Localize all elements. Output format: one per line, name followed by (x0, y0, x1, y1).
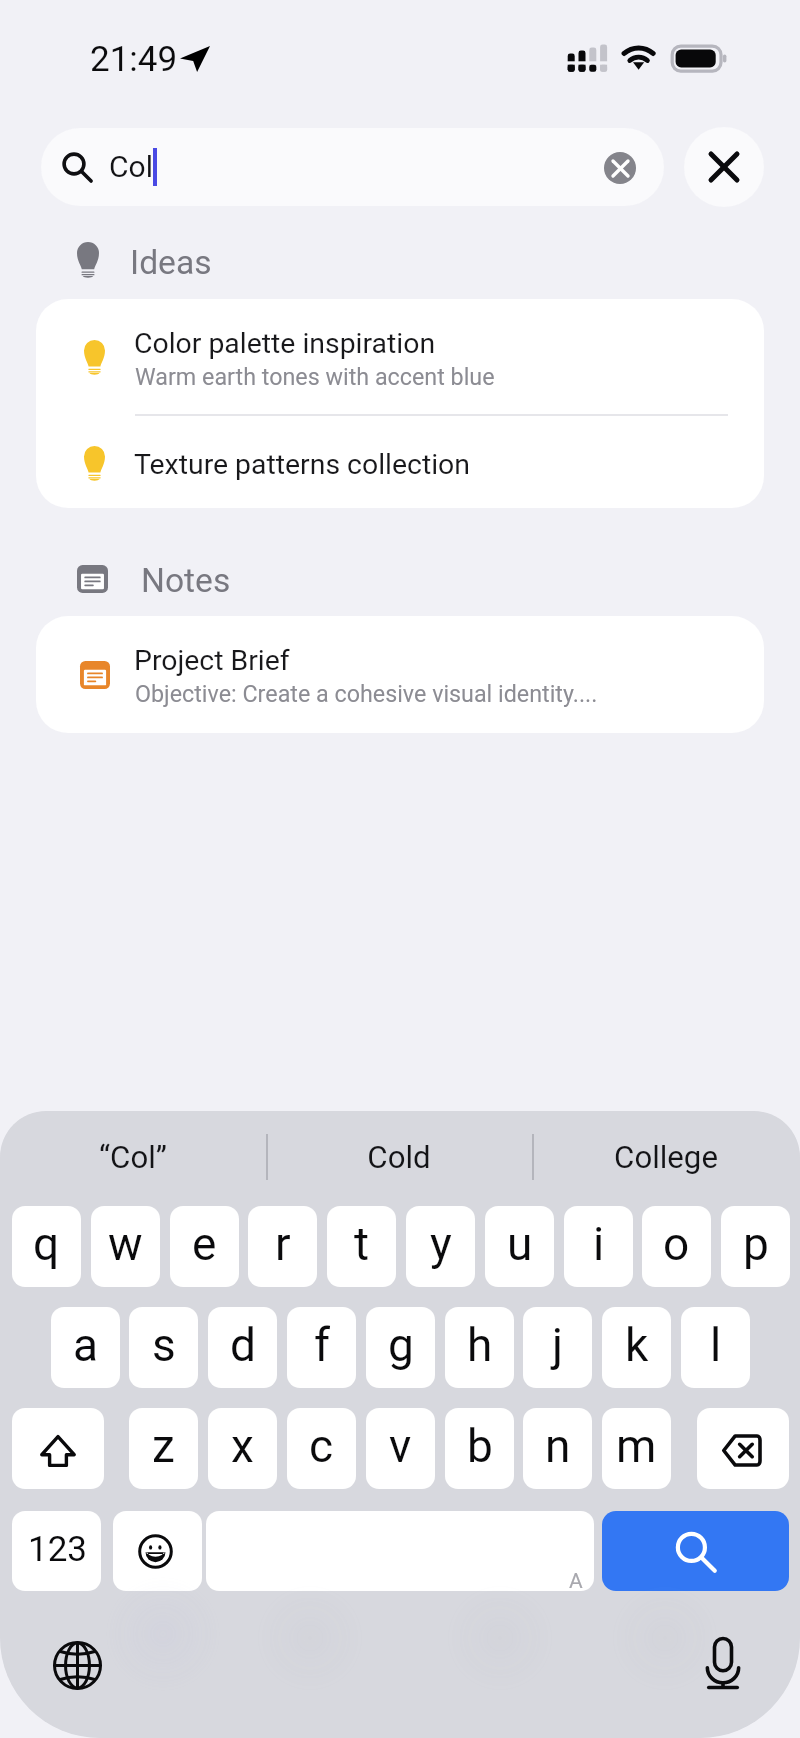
button[interactable]: Close search (684, 127, 764, 207)
staticText: v (389, 1419, 412, 1473)
button[interactable]: f (287, 1307, 356, 1388)
staticText: Project Brief (134, 644, 290, 677)
button[interactable]: u (485, 1206, 554, 1287)
staticText: Ideas (130, 243, 212, 282)
button[interactable]: t (327, 1206, 396, 1287)
button[interactable]: s (129, 1307, 198, 1388)
staticText: e (192, 1217, 217, 1271)
button[interactable]: q (12, 1206, 81, 1287)
staticText: c (309, 1419, 334, 1473)
staticText: b (467, 1419, 493, 1473)
button[interactable]: b (445, 1408, 514, 1489)
button[interactable]: n (523, 1408, 592, 1489)
staticText: w (108, 1217, 143, 1271)
staticText: A (569, 1569, 583, 1591)
button[interactable]: Space (206, 1511, 594, 1591)
button[interactable]: 123 (12, 1511, 101, 1591)
button[interactable]: Texture patterns collection (36, 414, 764, 506)
button[interactable]: j (523, 1307, 592, 1388)
button[interactable]: p (721, 1206, 790, 1287)
staticText: m (616, 1419, 657, 1473)
staticText: a (73, 1318, 99, 1372)
button[interactable]: i (564, 1206, 633, 1287)
staticText: n (545, 1419, 571, 1473)
button[interactable]: Emoji (113, 1511, 202, 1591)
staticText: f (314, 1318, 330, 1372)
button[interactable]: g (366, 1307, 435, 1388)
staticText: j (552, 1318, 564, 1372)
staticText: o (663, 1217, 690, 1271)
staticText: Notes (141, 561, 231, 600)
staticText: q (33, 1217, 60, 1271)
button[interactable]: h (445, 1307, 514, 1388)
button[interactable]: o (642, 1206, 711, 1287)
staticText: Warm earth tones with accent blue (135, 363, 495, 390)
staticText: x (231, 1419, 254, 1473)
staticText: 123 (28, 1529, 88, 1570)
button[interactable]: k (602, 1307, 671, 1388)
staticText: y (430, 1217, 452, 1271)
button[interactable]: l (681, 1307, 750, 1388)
button[interactable]: Col (41, 128, 664, 206)
staticText: r (275, 1217, 291, 1271)
staticText: Color palette inspiration (134, 327, 436, 360)
button[interactable]: x (208, 1408, 277, 1489)
button[interactable]: Backspace (697, 1408, 789, 1489)
staticText: Cold (367, 1139, 431, 1176)
staticText: College (614, 1139, 718, 1176)
button[interactable]: College (532, 1125, 800, 1189)
button[interactable]: Change keyboard language (45, 1633, 109, 1697)
button[interactable]: z (129, 1408, 198, 1489)
button[interactable]: a (51, 1307, 120, 1388)
staticText: Col (109, 149, 153, 184)
button[interactable]: d (208, 1307, 277, 1388)
staticText: p (743, 1217, 769, 1271)
staticText: Texture patterns collection (134, 448, 470, 481)
button[interactable]: m (602, 1408, 671, 1489)
staticText: l (710, 1318, 722, 1372)
button[interactable]: “Col” (0, 1125, 266, 1189)
button[interactable]: Shift (12, 1408, 104, 1489)
button[interactable]: y (406, 1206, 475, 1287)
staticText: g (388, 1318, 414, 1372)
staticText: t (354, 1217, 370, 1271)
button[interactable]: Cold (266, 1125, 532, 1189)
button[interactable]: r (248, 1206, 317, 1287)
button[interactable]: Voice input (690, 1631, 754, 1695)
button[interactable]: Project Brief (36, 616, 764, 733)
button[interactable]: Color palette inspiration (36, 299, 764, 414)
button[interactable]: v (366, 1408, 435, 1489)
staticText: u (507, 1217, 533, 1271)
button[interactable]: Search (602, 1511, 789, 1591)
staticText: Objective: Create a cohesive visual iden… (135, 680, 598, 707)
button[interactable]: w (91, 1206, 160, 1287)
staticText: 21:49 (90, 39, 178, 80)
staticText: k (625, 1318, 649, 1372)
staticText: i (593, 1217, 605, 1271)
staticText: “Col” (99, 1139, 167, 1176)
button[interactable]: e (170, 1206, 239, 1287)
staticText: s (152, 1318, 176, 1372)
staticText: h (467, 1318, 493, 1372)
button[interactable]: c (287, 1408, 356, 1489)
button[interactable]: Clear text (604, 152, 636, 184)
staticText: d (230, 1318, 256, 1372)
staticText: z (152, 1419, 175, 1473)
